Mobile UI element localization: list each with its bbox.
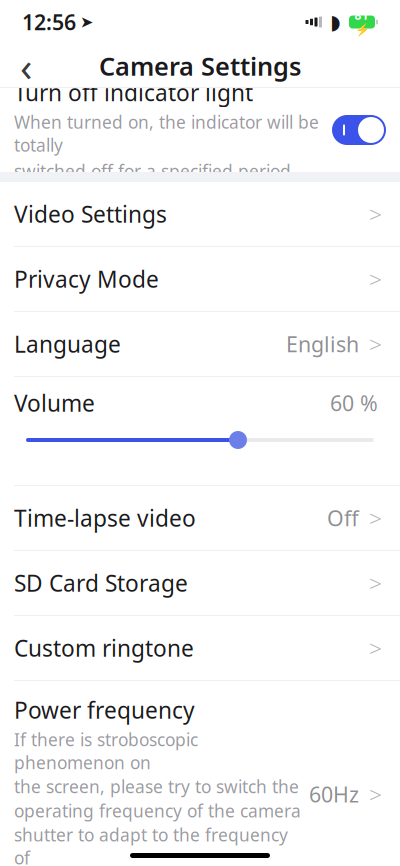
- staticText: >: [369, 503, 382, 533]
- staticText: switched off for a specified period.: [14, 160, 296, 183]
- button[interactable]: SD Card Storage: [0, 551, 400, 615]
- staticText: Camera Settings: [99, 49, 301, 83]
- button[interactable]: Custom ringtone: [0, 616, 400, 680]
- button[interactable]: Video Settings: [0, 182, 400, 246]
- staticText: Turn off indicator light: [14, 77, 253, 107]
- staticText: English: [286, 330, 359, 358]
- button[interactable]: Privacy Mode: [0, 247, 400, 311]
- staticText: >: [369, 264, 382, 294]
- staticText: Video Settings: [14, 199, 167, 229]
- button[interactable]: Language: [0, 312, 400, 376]
- staticText: If there is stroboscopic phenomenon on: [14, 728, 198, 774]
- staticText: >: [369, 329, 382, 359]
- staticText: Privacy Mode: [14, 264, 159, 294]
- staticText: >: [369, 633, 382, 663]
- staticText: Language: [14, 329, 121, 359]
- button[interactable]: Time-lapse video: [0, 486, 400, 550]
- staticText: Volume: [14, 388, 95, 418]
- staticText: Time-lapse video: [14, 503, 196, 533]
- staticText: ◗: [330, 11, 341, 33]
- staticText: >: [369, 199, 382, 229]
- staticText: ➤: [80, 13, 93, 31]
- staticText: >: [369, 779, 382, 809]
- staticText: operating frequency of the camera: [14, 799, 301, 822]
- staticText: ‹: [20, 39, 32, 92]
- button[interactable]: Power frequency: [0, 681, 400, 866]
- staticText: 81⚡: [354, 7, 369, 37]
- staticText: 12:56: [22, 8, 76, 36]
- staticText: the screen, please try to switch the: [14, 775, 299, 798]
- staticText: SD Card Storage: [14, 568, 188, 598]
- button[interactable]: Back: [0, 44, 52, 88]
- staticText: Custom ringtone: [14, 633, 194, 663]
- staticText: When turned on, the indicator will be to…: [14, 110, 319, 156]
- staticText: Power frequency: [14, 695, 195, 725]
- staticText: Off: [327, 504, 359, 532]
- staticText: shutter to adapt to the frequency of: [14, 823, 288, 866]
- staticText: >: [369, 568, 382, 598]
- staticText: 60Hz: [309, 780, 359, 808]
- button[interactable]: Turn off indicator light: [332, 115, 386, 145]
- staticText: 60 %: [330, 389, 378, 417]
